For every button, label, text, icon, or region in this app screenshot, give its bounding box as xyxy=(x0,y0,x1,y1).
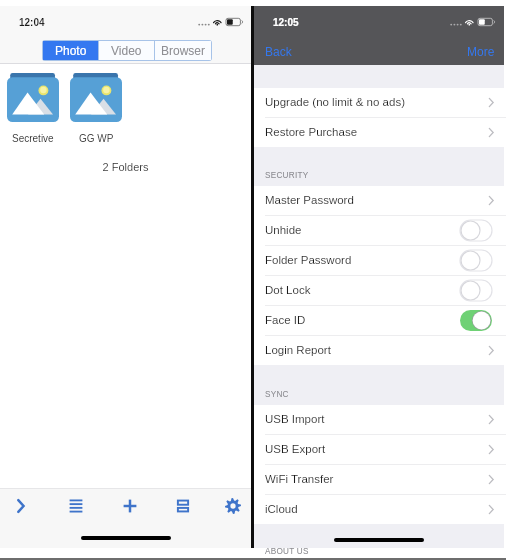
staticText: Login Report xyxy=(265,344,331,357)
staticText: USB Export xyxy=(265,443,326,456)
button[interactable]: Unhide xyxy=(254,216,504,245)
button[interactable] xyxy=(70,73,122,122)
staticText: Upgrade (no limit & no ads) xyxy=(265,96,405,109)
button[interactable]: Share xyxy=(2,489,40,527)
staticText: 12:05 xyxy=(273,17,299,28)
button[interactable] xyxy=(460,250,492,271)
button[interactable]: Dot Lock xyxy=(254,276,504,305)
button[interactable]: iCloud xyxy=(254,495,504,524)
button[interactable]: Restore Purchase xyxy=(254,118,504,147)
staticText: iCloud xyxy=(265,503,298,516)
button[interactable]: Folder Password xyxy=(254,246,504,275)
button[interactable]: WiFi Transfer xyxy=(254,465,504,494)
button[interactable]: List xyxy=(57,489,95,527)
button[interactable] xyxy=(460,280,492,301)
button[interactable]: Video xyxy=(99,41,154,60)
button[interactable]: Upgrade (no limit & no ads) xyxy=(254,88,504,117)
staticText: Master Password xyxy=(265,194,354,207)
staticText: GG WP xyxy=(79,133,114,144)
staticText: Secretive xyxy=(12,133,54,144)
staticText: ABOUT US xyxy=(265,547,309,556)
staticText: SYNC xyxy=(265,390,289,399)
button[interactable]: USB Export xyxy=(254,435,504,464)
button[interactable]: Face ID xyxy=(254,306,504,335)
button[interactable]: Login Report xyxy=(254,336,504,365)
staticText: WiFi Transfer xyxy=(265,473,334,486)
staticText: Dot Lock xyxy=(265,284,311,297)
button[interactable]: Settings xyxy=(214,489,252,527)
button[interactable] xyxy=(460,220,492,241)
button[interactable]: USB Import xyxy=(254,405,504,434)
staticText: USB Import xyxy=(265,413,325,426)
staticText: Unhide xyxy=(265,224,302,237)
button[interactable]: Add xyxy=(111,489,149,527)
button[interactable]: Browser xyxy=(155,41,211,60)
staticText: Face ID xyxy=(265,314,306,327)
button[interactable]: Back xyxy=(265,45,292,58)
button[interactable]: More xyxy=(467,45,495,58)
staticText: 12:04 xyxy=(19,17,45,28)
staticText: Back xyxy=(265,45,292,58)
button[interactable]: Photo xyxy=(43,41,98,60)
staticText: 2 Folders xyxy=(0,161,251,173)
staticText: More xyxy=(467,45,495,58)
button[interactable] xyxy=(7,73,59,122)
staticText: Browser xyxy=(161,44,206,57)
staticText: Photo xyxy=(55,44,87,57)
staticText: Folder Password xyxy=(265,254,352,267)
button[interactable]: Layout xyxy=(164,489,202,527)
button[interactable]: Master Password xyxy=(254,186,504,215)
button[interactable] xyxy=(460,310,492,331)
staticText: Restore Purchase xyxy=(265,126,358,139)
staticText: Video xyxy=(111,44,142,57)
staticText: SECURITY xyxy=(265,171,309,180)
